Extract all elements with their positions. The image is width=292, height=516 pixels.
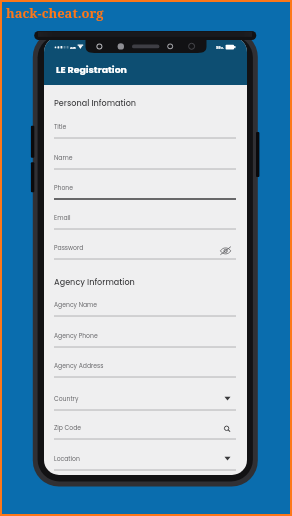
staticText: Password: [54, 244, 84, 253]
button[interactable]: Password: [54, 237, 236, 263]
button[interactable]: Title: [54, 116, 236, 142]
staticText: Name: [54, 154, 73, 163]
button[interactable]: Open dropdown: [221, 452, 235, 466]
button[interactable]: LE Registration: [44, 50, 247, 85]
button[interactable]: Phone: [54, 177, 236, 203]
button[interactable]: Search: [221, 421, 235, 435]
staticText: Agency Phone: [54, 332, 98, 341]
staticText: Title: [54, 123, 67, 132]
staticText: Zip Code: [54, 424, 82, 433]
staticText: Agency Information: [54, 276, 135, 287]
button[interactable]: Email: [54, 207, 236, 233]
button[interactable]: Show password: [221, 241, 235, 255]
staticText: Location: [54, 455, 80, 464]
staticText: hack-cheat.org: [6, 4, 104, 22]
button[interactable]: Country: [54, 388, 236, 414]
button[interactable]: Zip Code: [54, 417, 236, 443]
button[interactable]: Agency Address: [54, 355, 236, 381]
staticText: Phone: [54, 184, 74, 193]
staticText: Email: [54, 214, 71, 223]
button[interactable]: Name: [54, 147, 236, 173]
button[interactable]: Agency Phone: [54, 325, 236, 351]
staticText: Agency Address: [54, 362, 104, 371]
staticText: LE Registration: [56, 63, 127, 76]
staticText: Personal Infomation: [54, 97, 137, 108]
staticText: Country: [54, 395, 79, 404]
staticText: 98%: [216, 45, 224, 50]
button[interactable]: Agency Name: [54, 294, 236, 320]
button[interactable]: Location: [54, 448, 236, 474]
staticText: Agency Name: [54, 301, 98, 310]
button[interactable]: Open dropdown: [221, 392, 235, 406]
staticText: AIR: [70, 45, 76, 50]
